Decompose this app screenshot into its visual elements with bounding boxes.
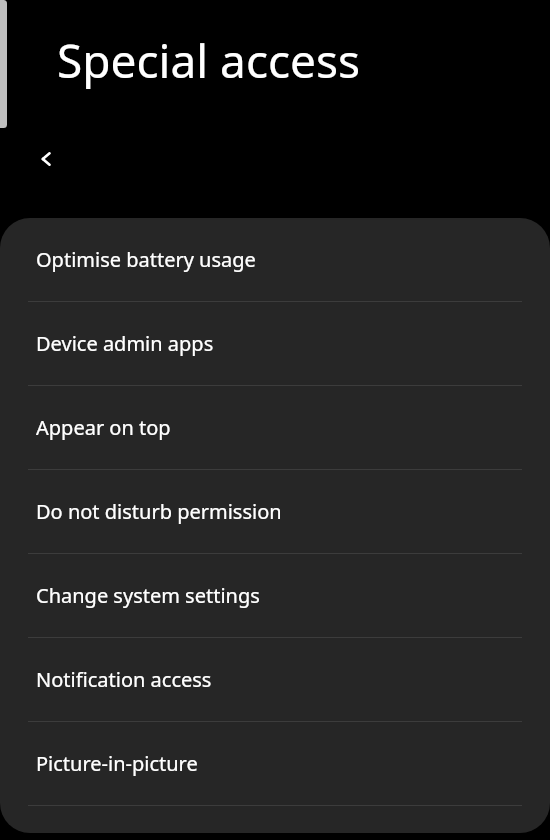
button[interactable]: Navigate up: [24, 135, 72, 183]
button[interactable]: Appear on top: [0, 386, 550, 469]
button[interactable]: Picture-in-picture: [0, 722, 550, 805]
staticText: Change system settings: [36, 582, 260, 609]
staticText: Appear on top: [36, 414, 171, 441]
staticText: Picture-in-picture: [36, 750, 198, 777]
button[interactable]: Device admin apps: [0, 302, 550, 385]
button[interactable]: Notification access: [0, 638, 550, 721]
staticText: Optimise battery usage: [36, 246, 256, 273]
staticText: Notification access: [36, 666, 212, 693]
button[interactable]: Optimise battery usage: [0, 218, 550, 301]
staticText: Device admin apps: [36, 330, 214, 357]
staticText: Do not disturb permission: [36, 498, 282, 525]
button[interactable]: Change system settings: [0, 554, 550, 637]
button[interactable]: Do not disturb permission: [0, 470, 550, 553]
staticText: Special access: [57, 29, 361, 92]
